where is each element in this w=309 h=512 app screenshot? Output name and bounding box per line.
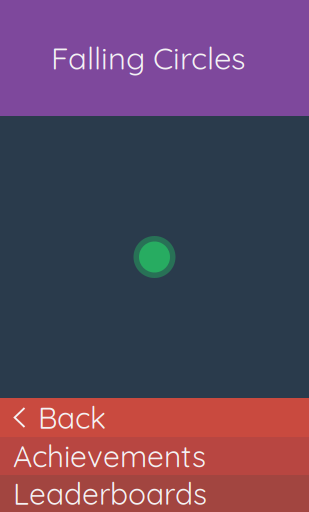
button[interactable]: Back [0, 398, 309, 437]
staticText: Falling Circles [51, 39, 246, 77]
staticText: Back [38, 399, 106, 436]
staticText: Leaderboards [13, 475, 207, 512]
button[interactable]: Leaderboards [0, 475, 309, 512]
staticText: Achievements [13, 437, 206, 475]
button[interactable]: Achievements [0, 437, 309, 475]
